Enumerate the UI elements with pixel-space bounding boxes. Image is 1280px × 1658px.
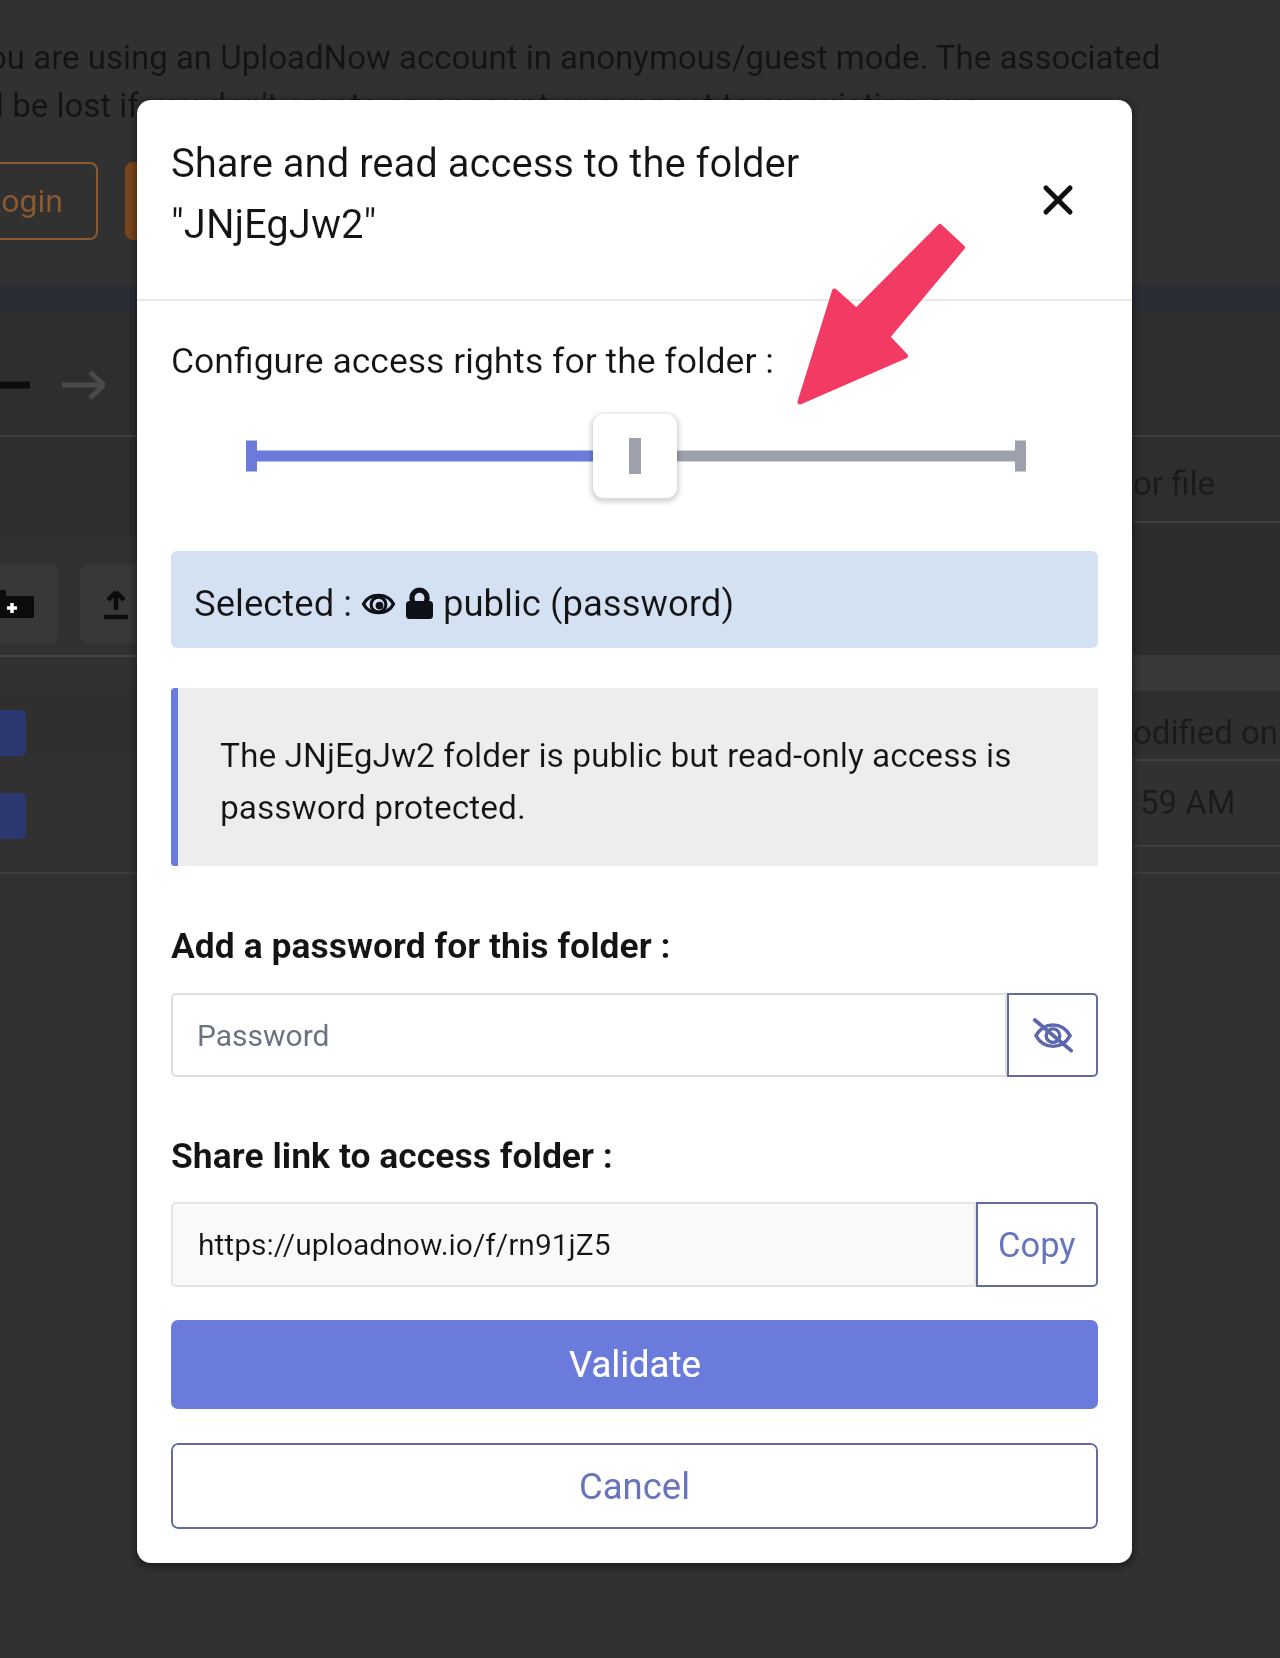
button[interactable]: Cancel [171,1443,1098,1529]
staticText: Configure access rights for the folder : [171,340,774,382]
button[interactable]: https://uploadnow.io/f/rn91jZ5 [171,1202,976,1287]
staticText: odified on [1133,713,1279,752]
staticText: Copy [998,1225,1076,1265]
staticText: ll be lost if you don't create an accoun… [0,86,981,125]
staticText: public (password) [443,582,735,625]
staticText: Share and read access to the folder "JNj… [171,140,871,248]
staticText: Validate [569,1343,701,1386]
button[interactable]: Copy [976,1202,1098,1287]
staticText: https://uploadnow.io/f/rn91jZ5 [198,1227,611,1262]
button[interactable]: Show password [1007,993,1098,1077]
staticText: Login [0,182,63,220]
staticText: ou are using an UploadNow account in ano… [0,38,1268,77]
staticText: Cancel [579,1465,691,1508]
staticText: or file [1133,464,1216,503]
staticText: The JNjEgJw2 folder is public but read-o… [220,736,1062,827]
button[interactable]: Access level slider [593,414,677,498]
staticText: Add a password for this folder : [171,925,671,967]
button[interactable]: Password [171,993,1007,1077]
staticText: Share link to access folder : [171,1135,613,1177]
button[interactable]: Close [1030,172,1086,228]
staticText: Password [197,1018,330,1053]
button[interactable]: Validate [171,1320,1098,1409]
staticText: Selected : [194,582,362,625]
staticText: 59 AM [1140,783,1236,822]
button[interactable]: Selected : [171,551,1098,648]
